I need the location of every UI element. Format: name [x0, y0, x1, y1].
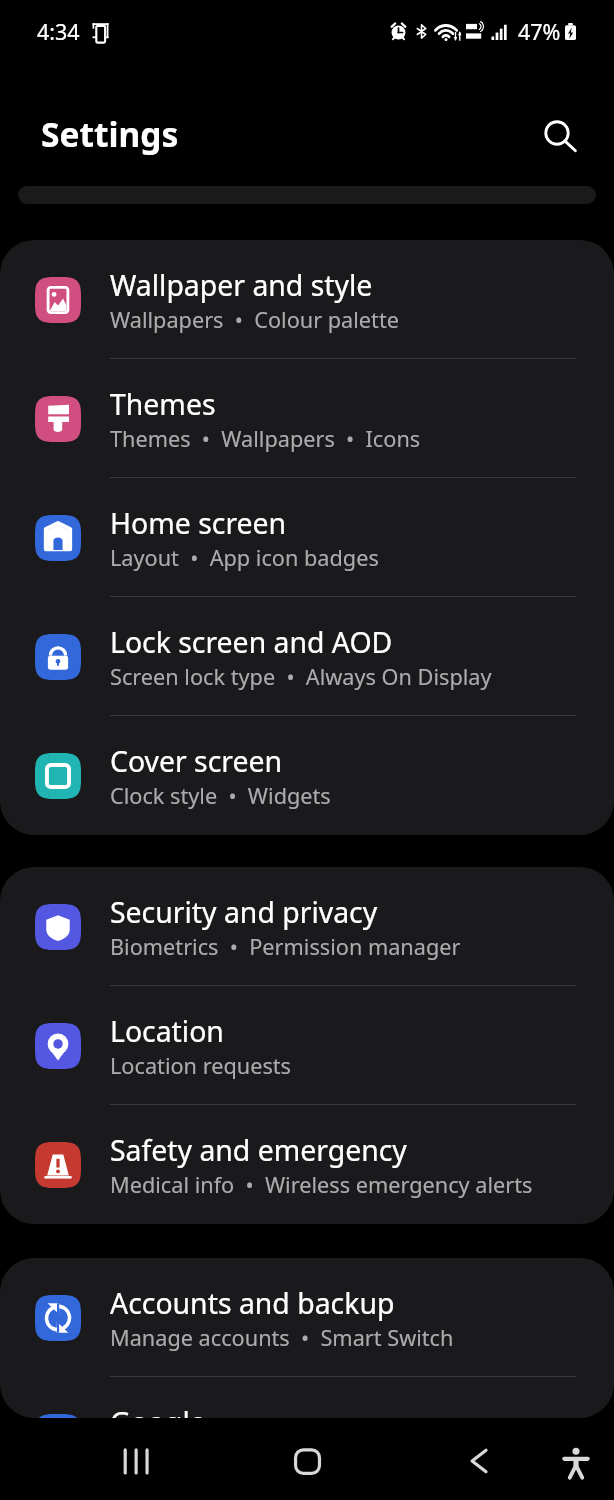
staticText: Wallpapers • Colour palette [110, 305, 399, 335]
staticText: Lock screen and AOD [110, 623, 393, 662]
staticText: Biometrics • Permission manager [110, 932, 461, 962]
staticText: Settings [41, 111, 179, 157]
staticText: Manage accounts • Smart Switch [110, 1323, 454, 1353]
button[interactable]: Home screen [0, 478, 614, 597]
staticText: Medical info • Wireless emergency alerts [110, 1170, 533, 1200]
staticText: Cover screen [110, 742, 283, 781]
staticText: Screen lock type • Always On Display [110, 662, 492, 692]
staticText: Wallpaper and style [110, 266, 373, 305]
button[interactable]: Accounts and backup [0, 1258, 614, 1377]
staticText: Safety and emergency [110, 1131, 407, 1170]
button[interactable]: Search [531, 108, 591, 168]
button[interactable]: Wallpaper and style [0, 240, 614, 359]
staticText: Home screen [110, 504, 287, 543]
staticText: Location [110, 1012, 224, 1051]
button[interactable]: Google [0, 1377, 614, 1418]
staticText: Accounts and backup [110, 1284, 395, 1323]
staticText: 47% [518, 17, 561, 46]
staticText: Layout • App icon badges [110, 543, 379, 573]
staticText: Themes • Wallpapers • Icons [110, 424, 421, 454]
button[interactable]: Safety and emergency [0, 1105, 614, 1224]
staticText: Location requests [110, 1051, 291, 1081]
button[interactable]: Recent apps [106, 1431, 166, 1491]
button[interactable]: Cover screen [0, 716, 614, 835]
button[interactable]: Location [0, 986, 614, 1105]
button[interactable]: Lock screen and AOD [0, 597, 614, 716]
button[interactable]: Home [277, 1431, 337, 1491]
staticText: 4:34 [37, 17, 80, 46]
staticText: Themes [110, 385, 216, 424]
staticText: Clock style • Widgets [110, 781, 331, 811]
staticText: Security and privacy [110, 893, 378, 932]
staticText: Google [110, 1403, 206, 1418]
button[interactable]: Back [449, 1431, 509, 1491]
button[interactable]: Accessibility [546, 1433, 606, 1493]
button[interactable]: Security and privacy [0, 867, 614, 986]
button[interactable]: Themes [0, 359, 614, 478]
